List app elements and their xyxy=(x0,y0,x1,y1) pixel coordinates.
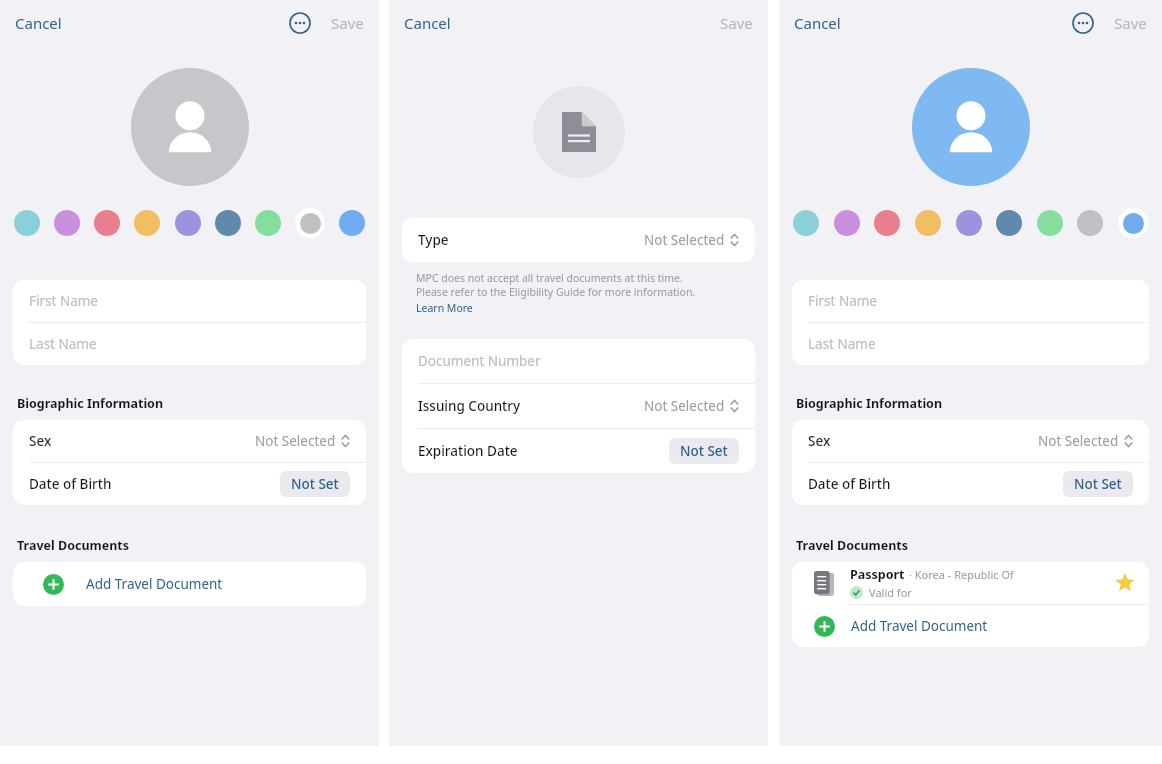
button[interactable]: Color 4 xyxy=(956,210,982,236)
staticText: Add Travel Document xyxy=(86,575,223,593)
button[interactable]: Color 2 xyxy=(874,210,900,236)
button[interactable]: Add Travel Document xyxy=(13,562,366,606)
button[interactable]: Not Set xyxy=(1063,471,1133,497)
staticText: First Name xyxy=(808,292,877,310)
staticText: Save xyxy=(1114,13,1147,33)
staticText: Not Selected xyxy=(644,397,725,415)
button[interactable]: Color 4 xyxy=(175,210,201,236)
button[interactable]: Color 5 xyxy=(215,210,241,236)
button[interactable]: Sex xyxy=(792,420,1149,462)
button[interactable]: Last Name xyxy=(792,323,1149,365)
button[interactable]: Save xyxy=(329,11,366,35)
button[interactable]: First Name xyxy=(13,280,366,322)
staticText: Travel Documents xyxy=(796,537,909,554)
button[interactable]: Profile photo xyxy=(912,68,1030,186)
button[interactable]: Color 8 xyxy=(339,210,365,236)
staticText: Not Set xyxy=(680,442,728,460)
button[interactable]: Color 6 xyxy=(1037,210,1063,236)
button[interactable]: Learn More xyxy=(416,301,473,315)
staticText: Not Set xyxy=(1074,475,1122,493)
staticText: Last Name xyxy=(29,335,97,353)
staticText: Date of Birth xyxy=(808,475,891,493)
button[interactable]: Color 7 selected xyxy=(295,208,325,238)
button[interactable]: Document Number xyxy=(402,339,755,383)
button[interactable]: Color 6 xyxy=(255,210,281,236)
button[interactable]: More options xyxy=(1072,12,1094,34)
button[interactable]: Color 0 xyxy=(793,210,819,236)
staticText: Save xyxy=(720,13,753,33)
staticText: Sex xyxy=(29,432,52,450)
staticText: Expiration Date xyxy=(418,442,518,460)
button[interactable]: Color 5 xyxy=(996,210,1022,236)
staticText: Type xyxy=(418,231,449,249)
button[interactable]: Save xyxy=(1112,11,1149,35)
button[interactable]: Color 1 xyxy=(834,210,860,236)
button[interactable]: Cancel xyxy=(13,11,64,35)
button[interactable]: Color 2 xyxy=(94,210,120,236)
staticText: Last Name xyxy=(808,335,876,353)
staticText: Travel Documents xyxy=(17,537,130,554)
staticText: Add Travel Document xyxy=(851,617,988,635)
button[interactable]: Not Set xyxy=(669,438,739,464)
staticText: · Korea - Republic Of xyxy=(909,567,1014,582)
button[interactable]: Color 0 xyxy=(14,210,40,236)
staticText: Issuing Country xyxy=(418,397,521,415)
staticText: Passport xyxy=(850,566,905,583)
button[interactable]: Sex xyxy=(13,420,366,462)
button[interactable]: More options xyxy=(289,12,311,34)
button[interactable]: Date of Birth xyxy=(792,463,1149,505)
button[interactable]: Favorite xyxy=(1113,571,1137,595)
button[interactable]: Color 3 xyxy=(134,210,160,236)
button[interactable]: Type xyxy=(402,218,755,262)
button[interactable]: Passport xyxy=(792,562,1149,604)
staticText: First Name xyxy=(29,292,98,310)
button[interactable]: First Name xyxy=(792,280,1149,322)
button[interactable]: Color 8 selected xyxy=(1118,208,1148,238)
staticText: MPC does not accept all travel documents… xyxy=(416,271,696,299)
staticText: Valid for xyxy=(869,585,912,600)
button[interactable]: Color 7 xyxy=(1077,210,1103,236)
staticText: Not Set xyxy=(291,475,339,493)
button[interactable]: Last Name xyxy=(13,323,366,365)
button[interactable]: Expiration Date xyxy=(402,429,755,473)
staticText: Cancel xyxy=(15,13,62,33)
button[interactable]: Save xyxy=(718,11,755,35)
button[interactable]: Color 3 xyxy=(915,210,941,236)
button[interactable]: Issuing Country xyxy=(402,384,755,428)
staticText: Document Number xyxy=(418,352,541,370)
button[interactable]: Add Travel Document xyxy=(792,605,1149,647)
staticText: Cancel xyxy=(794,13,841,33)
button[interactable]: Color 1 xyxy=(54,210,80,236)
staticText: Biographic Information xyxy=(796,395,943,412)
button[interactable]: Cancel xyxy=(402,11,453,35)
staticText: Not Selected xyxy=(1038,432,1119,450)
staticText: Date of Birth xyxy=(29,475,112,493)
button[interactable]: Not Set xyxy=(280,471,350,497)
button[interactable]: Profile photo xyxy=(131,68,249,186)
button[interactable]: Cancel xyxy=(792,11,843,35)
staticText: Learn More xyxy=(416,301,473,315)
staticText: Cancel xyxy=(404,13,451,33)
staticText: Save xyxy=(331,13,364,33)
staticText: Not Selected xyxy=(255,432,336,450)
button[interactable]: Date of Birth xyxy=(13,463,366,505)
staticText: Biographic Information xyxy=(17,395,164,412)
staticText: Not Selected xyxy=(644,231,725,249)
staticText: Sex xyxy=(808,432,831,450)
